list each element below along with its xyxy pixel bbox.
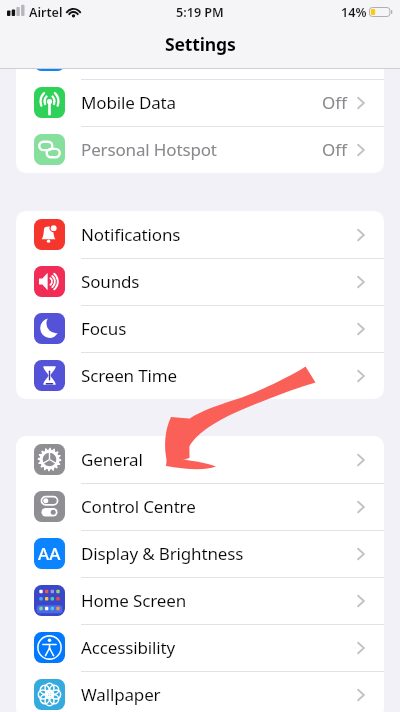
staticText: Home Screen [81, 589, 186, 612]
staticText: Focus [81, 317, 127, 340]
staticText: Accessibility [81, 636, 175, 659]
button[interactable]: Personal Hotspot [16, 126, 384, 173]
staticText: 14% [341, 4, 367, 21]
button[interactable]: Notifications [16, 211, 384, 258]
button[interactable]: Focus [16, 305, 384, 352]
staticText: Airtel [29, 4, 63, 21]
staticText: Sounds [81, 270, 140, 293]
button[interactable]: Wallpaper [16, 671, 384, 712]
button[interactable]: Mobile Data [16, 79, 384, 126]
button[interactable]: General [16, 436, 384, 483]
staticText: 5:19 PM [176, 4, 224, 21]
staticText: Wallpaper [81, 683, 161, 706]
staticText: Mobile Data [81, 91, 176, 114]
button[interactable]: Control Centre [16, 483, 384, 530]
button[interactable]: Screen Time [16, 352, 384, 399]
staticText: Personal Hotspot [81, 138, 217, 161]
button[interactable]: Accessibility [16, 624, 384, 671]
staticText: AA [38, 542, 61, 565]
staticText: Screen Time [81, 364, 177, 387]
staticText: Off [322, 138, 347, 161]
staticText: General [81, 448, 143, 471]
staticText: Settings [165, 32, 236, 56]
staticText: Notifications [81, 223, 181, 246]
button[interactable]: Wi-Fi [16, 32, 384, 79]
staticText: Display & Brightness [81, 542, 244, 565]
staticText: Off [322, 91, 347, 114]
button[interactable]: Sounds [16, 258, 384, 305]
button[interactable]: AA [16, 530, 384, 577]
button[interactable]: Home Screen [16, 577, 384, 624]
staticText: Control Centre [81, 495, 196, 518]
